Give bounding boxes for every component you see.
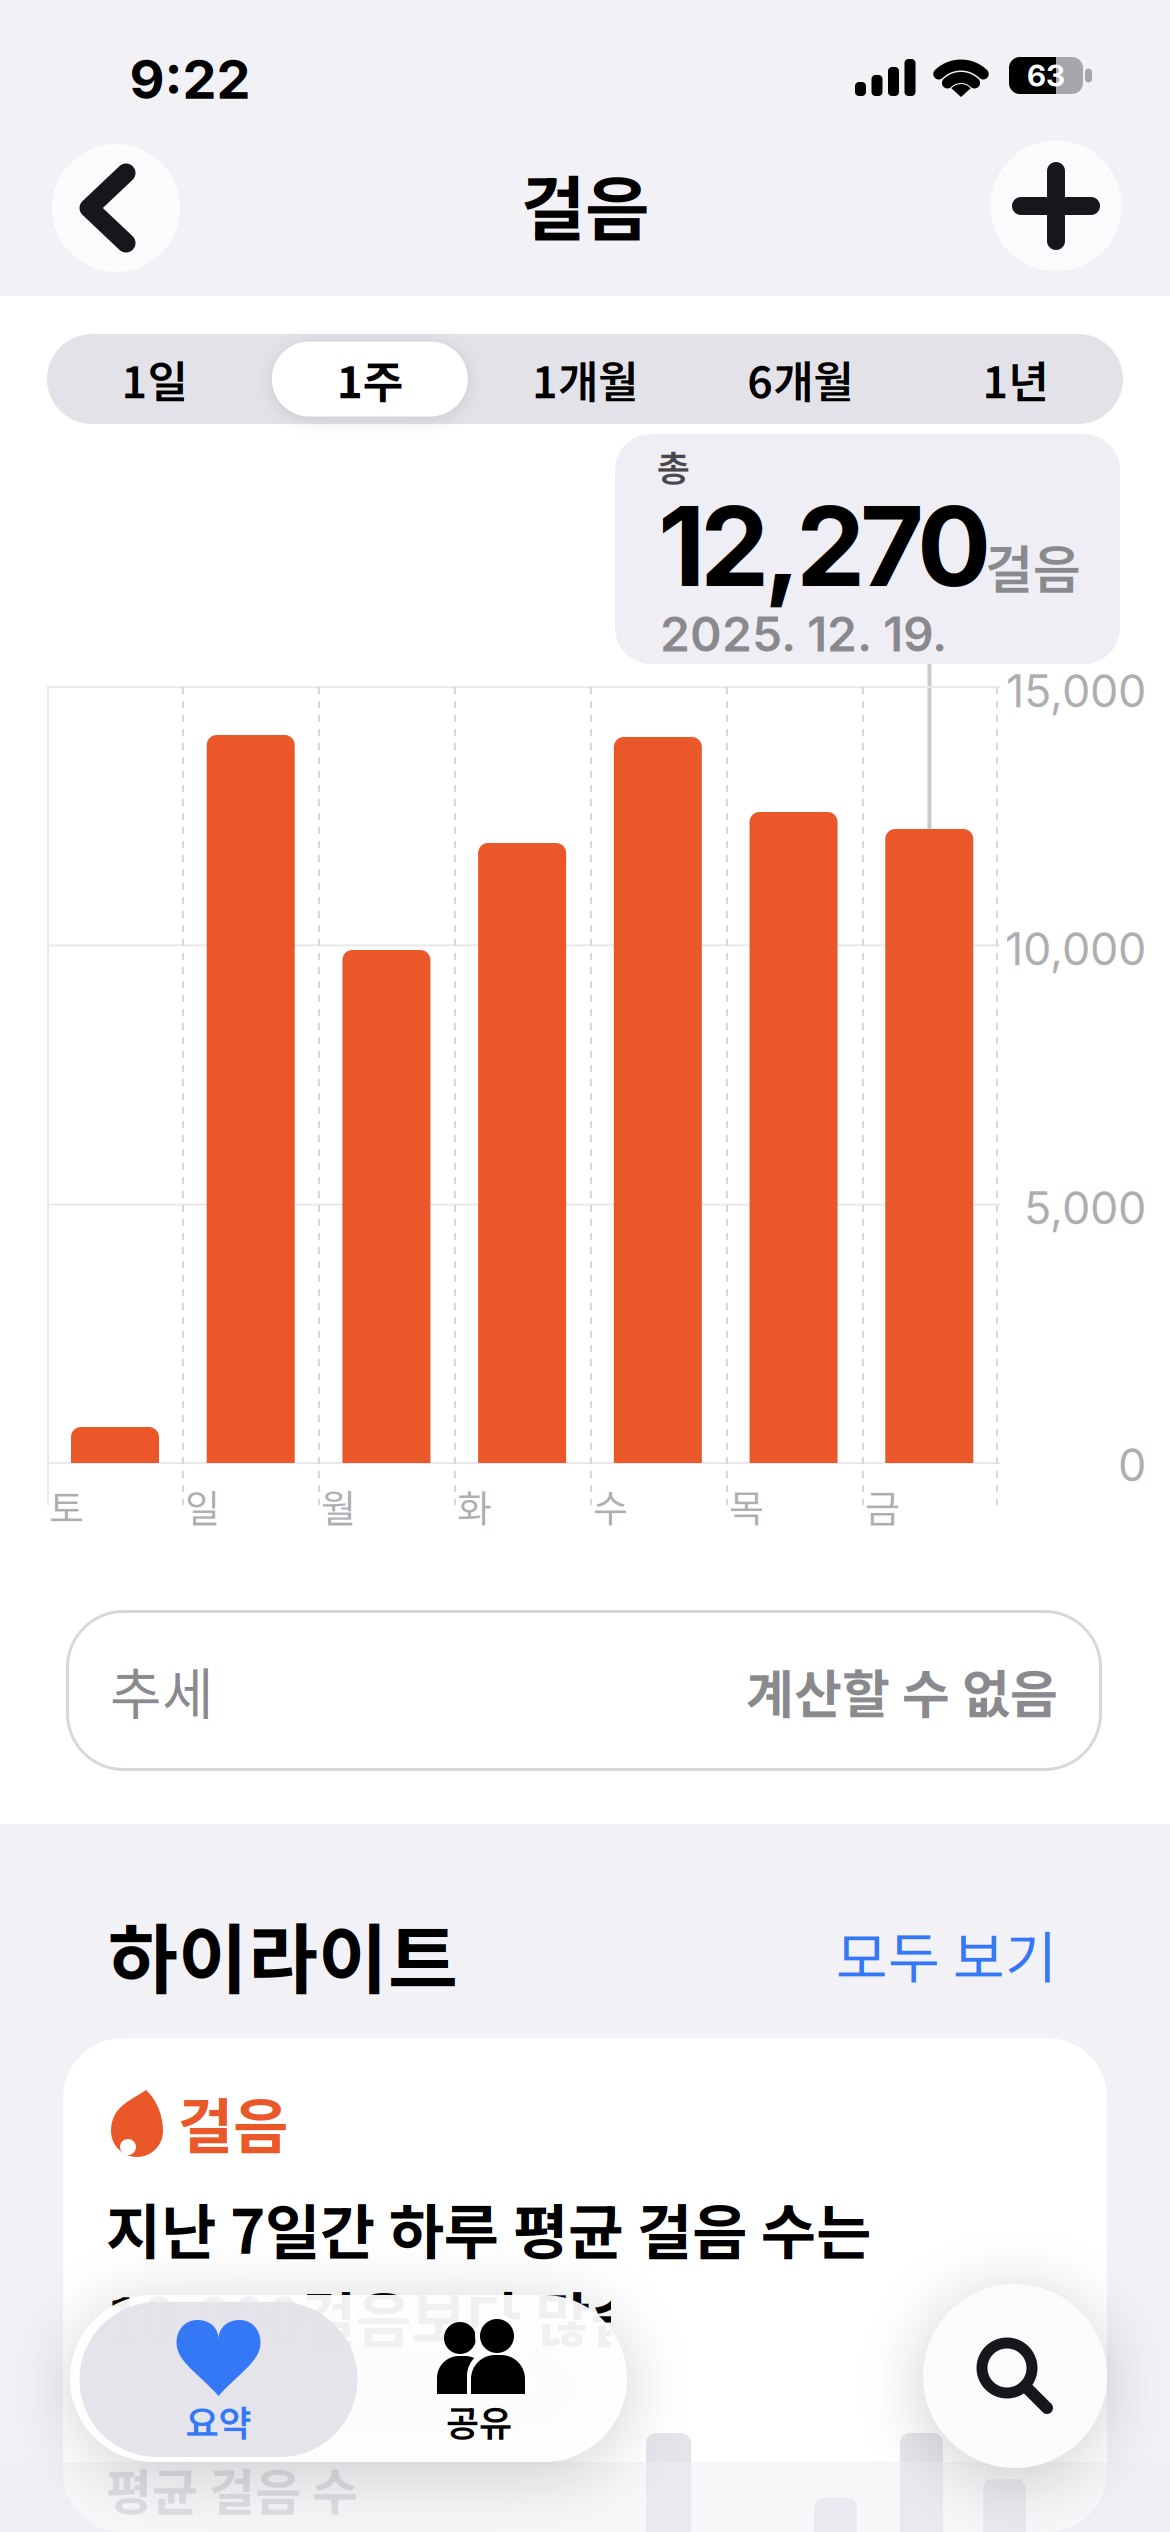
staticText: 공유: [446, 2395, 512, 2447]
staticText: 토: [49, 1478, 84, 1533]
staticText: 0: [1118, 1438, 1146, 1492]
staticText: 일: [185, 1478, 220, 1533]
staticText: 목: [729, 1478, 764, 1533]
button[interactable]: [63, 2038, 1107, 2532]
staticText: 걸음: [178, 2079, 288, 2165]
staticText: 추세: [110, 1650, 214, 1731]
button[interactable]: 1주: [264, 334, 476, 424]
staticText: 10,000: [1005, 922, 1146, 976]
staticText: 10,000걸음보다 많습니다: [106, 2273, 755, 2359]
staticText: 걸음: [521, 153, 649, 255]
staticText: 1주: [337, 347, 403, 411]
staticText: 63: [1027, 57, 1065, 94]
staticText: 요약: [185, 2395, 251, 2447]
button[interactable]: 모두 보기: [0, 0, 1170, 2532]
staticText: 평균 걸음 수: [106, 2453, 358, 2525]
staticText: 1년: [982, 347, 1048, 411]
staticText: 15,000: [1006, 664, 1146, 718]
staticText: 화: [457, 1478, 492, 1533]
button[interactable]: 공유: [349, 2302, 609, 2457]
button[interactable]: Back: [52, 144, 180, 272]
staticText: 하이라이트: [108, 1899, 458, 2009]
button[interactable]: 1개월: [479, 334, 691, 424]
staticText: 5,000: [1024, 1181, 1146, 1235]
button[interactable]: Add data: [990, 140, 1121, 271]
staticText: 금: [865, 1478, 900, 1533]
staticText: 걸음: [985, 528, 1081, 604]
staticText: 2025. 12. 19.: [660, 605, 947, 663]
staticText: 6개월: [747, 347, 853, 411]
staticText: 12,270: [658, 479, 991, 613]
button[interactable]: 6개월: [694, 334, 906, 424]
button[interactable]: Search: [923, 2284, 1107, 2468]
staticText: 9:22: [129, 46, 250, 112]
button[interactable]: 추세: [66, 1610, 1102, 1771]
button[interactable]: 요약: [79, 2302, 357, 2457]
button[interactable]: 1년: [909, 334, 1121, 424]
staticText: 총: [657, 440, 690, 492]
staticText: 1개월: [532, 347, 638, 411]
button[interactable]: 1일: [49, 334, 261, 424]
staticText: 수: [593, 1478, 628, 1533]
staticText: 지난 7일간 하루 평균 걸음 수는: [106, 2185, 871, 2271]
staticText: 월: [321, 1478, 356, 1533]
staticText: 1일: [122, 347, 188, 411]
staticText: 계산할 수 없음: [746, 1653, 1058, 1728]
staticText: 모두 보기: [836, 1913, 1057, 1995]
